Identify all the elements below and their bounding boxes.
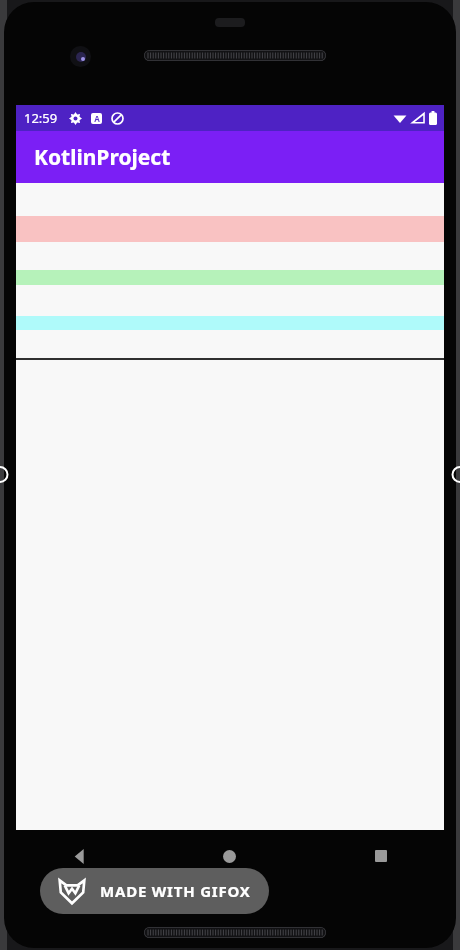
- staticText: KotlinProject: [34, 143, 171, 172]
- button[interactable]: Recent apps: [305, 830, 456, 882]
- staticText: 12:59: [24, 109, 58, 127]
- staticText: A: [94, 113, 100, 124]
- button[interactable]: Back: [4, 830, 154, 882]
- button[interactable]: Home: [154, 830, 305, 882]
- button[interactable]: MADE WITH GIFOX: [40, 868, 269, 914]
- button[interactable]: KotlinProject: [16, 131, 444, 183]
- staticText: MADE WITH GIFOX: [100, 881, 251, 901]
